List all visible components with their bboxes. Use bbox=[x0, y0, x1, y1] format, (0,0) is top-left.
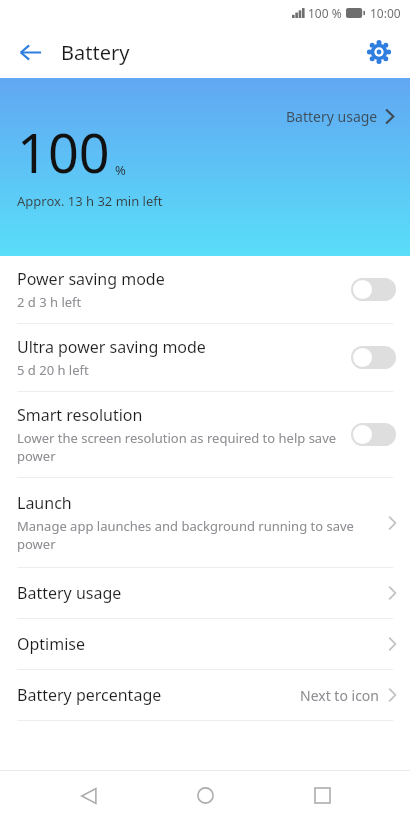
staticText: Launch bbox=[17, 492, 72, 514]
staticText: 100 % bbox=[308, 5, 342, 21]
button[interactable]: Optimise bbox=[0, 619, 410, 669]
button[interactable]: Home bbox=[177, 771, 233, 820]
staticText: Battery usage bbox=[17, 582, 122, 604]
staticText: Optimise bbox=[17, 633, 86, 655]
button[interactable]: Recents bbox=[294, 771, 350, 820]
staticText: Approx. 13 h 32 min left bbox=[17, 192, 163, 210]
button[interactable]: Launch bbox=[0, 478, 410, 567]
staticText: 100 bbox=[17, 115, 110, 189]
staticText: 2 d 3 h left bbox=[17, 293, 82, 311]
staticText: Next to icon bbox=[300, 686, 379, 705]
button[interactable]: Ultra power saving mode bbox=[0, 324, 410, 391]
button[interactable]: Battery usage bbox=[0, 568, 410, 618]
staticText: Smart resolution bbox=[17, 404, 143, 426]
button[interactable]: Toggle Ultra power saving mode bbox=[351, 346, 396, 369]
staticText: % bbox=[115, 161, 126, 179]
staticText: Battery bbox=[61, 39, 130, 66]
staticText: Battery usage bbox=[286, 107, 378, 126]
button[interactable]: Back bbox=[61, 771, 117, 820]
staticText: 10:00 bbox=[370, 5, 401, 21]
button[interactable]: Battery percentage bbox=[0, 670, 410, 720]
button[interactable]: Back bbox=[8, 30, 52, 74]
staticText: Ultra power saving mode bbox=[17, 336, 206, 358]
button[interactable]: Settings bbox=[357, 30, 401, 74]
staticText: Manage app launches and background runni… bbox=[17, 517, 380, 553]
staticText: Battery percentage bbox=[17, 684, 162, 706]
staticText: 5 d 20 h left bbox=[17, 361, 89, 379]
button[interactable]: Battery usage bbox=[282, 104, 398, 129]
staticText: Lower the screen resolution as required … bbox=[17, 429, 337, 465]
button[interactable]: Toggle Power saving mode bbox=[351, 278, 396, 301]
staticText: Power saving mode bbox=[17, 268, 165, 290]
button[interactable]: Smart resolution bbox=[0, 392, 410, 477]
button[interactable]: Toggle Smart resolution bbox=[351, 423, 396, 446]
button[interactable]: Power saving mode bbox=[0, 256, 410, 323]
